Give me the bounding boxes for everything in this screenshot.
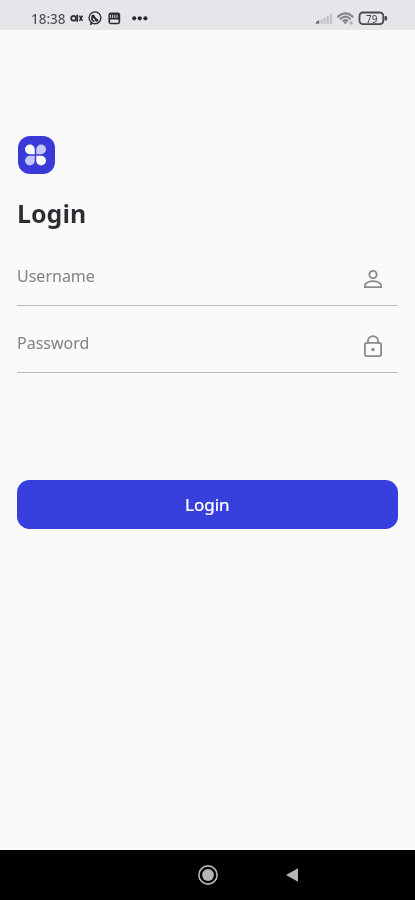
staticText: 79 [366, 12, 378, 26]
staticText: Login [185, 493, 230, 516]
staticText: Login [17, 196, 87, 230]
button[interactable]: Login [17, 480, 398, 529]
staticText: Password [17, 332, 90, 354]
staticText: 18:38 [31, 10, 66, 28]
button[interactable]: Home [186, 853, 230, 897]
button[interactable]: Back [270, 853, 314, 897]
other: Password [364, 335, 382, 357]
other: Username [364, 270, 382, 288]
staticText: Username [17, 265, 95, 287]
